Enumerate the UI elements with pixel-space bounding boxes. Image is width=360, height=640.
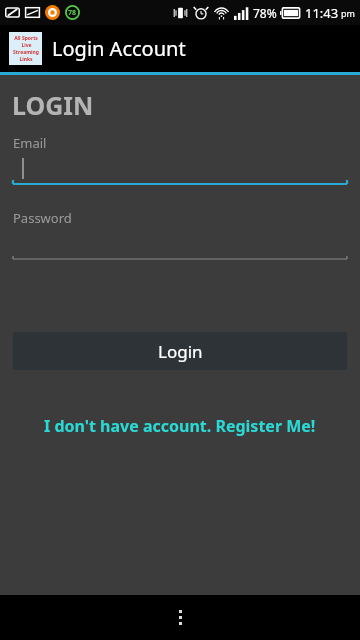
button[interactable] xyxy=(0,152,360,186)
staticText: All Sports xyxy=(14,35,38,42)
staticText: Password xyxy=(13,209,72,227)
staticText: LOGIN xyxy=(12,88,94,122)
staticText: Live xyxy=(21,42,32,49)
staticText: Links xyxy=(19,56,33,63)
staticText: Streaming xyxy=(13,49,39,56)
staticText: Email xyxy=(13,134,47,152)
staticText: 78% xyxy=(253,5,277,21)
button[interactable] xyxy=(0,227,360,261)
staticText: pm xyxy=(341,7,355,19)
staticText: Login xyxy=(158,340,203,363)
button[interactable]: Login xyxy=(13,332,347,370)
button[interactable]: More options xyxy=(156,595,204,640)
button[interactable]: I don't have account. Register Me! xyxy=(0,415,360,437)
staticText: 78 xyxy=(68,8,77,18)
staticText: Login Account xyxy=(52,35,186,62)
staticText: I don't have account. Register Me! xyxy=(44,415,316,437)
staticText: 11:43 xyxy=(305,4,339,22)
